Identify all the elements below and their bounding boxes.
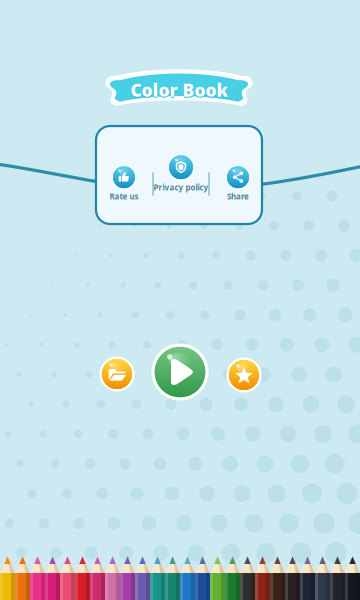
button[interactable]: Favourites bbox=[226, 357, 261, 392]
button[interactable]: Privacy policy bbox=[152, 153, 210, 194]
staticText: Color Book bbox=[130, 78, 227, 101]
button[interactable]: Share bbox=[213, 165, 263, 203]
button[interactable]: Open gallery bbox=[99, 356, 134, 391]
staticText: Privacy policy bbox=[153, 182, 208, 193]
staticText: Share bbox=[227, 191, 249, 202]
staticText: Color Book bbox=[130, 80, 227, 103]
button[interactable]: Play bbox=[151, 343, 208, 400]
button[interactable]: Rate us bbox=[99, 165, 149, 203]
staticText: Rate us bbox=[109, 191, 138, 202]
